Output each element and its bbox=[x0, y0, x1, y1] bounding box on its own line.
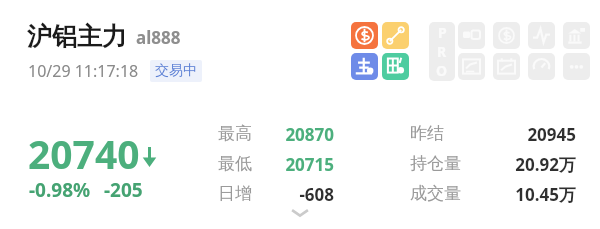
button[interactable]: Volatility bbox=[528, 22, 555, 49]
staticText: O bbox=[436, 61, 448, 80]
staticText: -608 bbox=[258, 183, 334, 206]
button[interactable]: Main bbox=[351, 53, 378, 80]
staticText: 最高 bbox=[218, 123, 252, 144]
button[interactable]: More bbox=[563, 53, 590, 80]
staticText: 10.45万 bbox=[486, 183, 576, 206]
staticText: 20740 bbox=[28, 127, 140, 180]
staticText: 20870 bbox=[258, 123, 334, 146]
staticText: 20.92万 bbox=[486, 153, 576, 176]
staticText: 昨结 bbox=[410, 123, 444, 144]
staticText: -0.98% bbox=[29, 177, 91, 203]
staticText: R bbox=[437, 42, 447, 61]
button[interactable]: Trend bbox=[382, 22, 409, 49]
staticText: 20945 bbox=[486, 123, 576, 146]
button[interactable]: Expand bbox=[282, 205, 318, 221]
staticText: 最低 bbox=[218, 153, 252, 174]
button[interactable]: Chart bbox=[458, 53, 485, 80]
staticText: 10/29 11:17:18 bbox=[28, 60, 139, 82]
staticText: P bbox=[438, 23, 447, 42]
button[interactable]: Funds bbox=[351, 22, 378, 49]
staticText: al888 bbox=[136, 26, 181, 49]
staticText: 20715 bbox=[258, 153, 334, 176]
button[interactable]: News bbox=[458, 22, 485, 49]
button[interactable]: Sub bbox=[382, 53, 409, 80]
button[interactable]: Capital bbox=[493, 22, 520, 49]
staticText: 沪铝主力 bbox=[27, 21, 127, 52]
staticText: 交易中 bbox=[155, 62, 197, 80]
staticText: -205 bbox=[104, 177, 143, 203]
button[interactable]: Report bbox=[493, 53, 520, 80]
button[interactable]: PRO bbox=[429, 22, 455, 81]
button[interactable]: Institution bbox=[563, 22, 590, 49]
button[interactable]: Sentiment bbox=[528, 53, 555, 80]
staticText: 日增 bbox=[218, 183, 252, 204]
staticText: 持仓量 bbox=[410, 153, 461, 174]
button[interactable]: 交易中 bbox=[150, 60, 202, 82]
staticText: 成交量 bbox=[410, 183, 461, 204]
